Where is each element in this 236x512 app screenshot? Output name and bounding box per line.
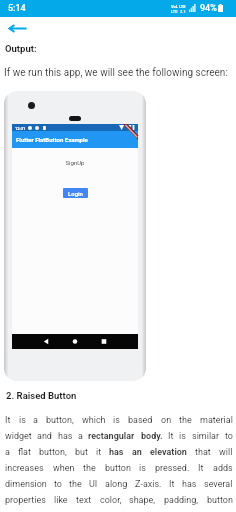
- staticText: like: [54, 495, 68, 506]
- staticText: button,: [39, 447, 67, 458]
- staticText: the: [69, 479, 82, 490]
- staticText: properties: [5, 495, 46, 506]
- staticText: when: [53, 463, 75, 474]
- staticText: has: [182, 479, 197, 490]
- staticText: SignUp: [12, 159, 138, 166]
- staticText: rectangular: [88, 431, 135, 442]
- button[interactable]: Back: [2, 19, 32, 37]
- staticText: 2.1: [180, 9, 186, 14]
- staticText: It: [168, 431, 174, 442]
- staticText: several: [204, 479, 233, 490]
- button[interactable]: Login: [63, 188, 88, 198]
- staticText: flat: [18, 447, 31, 458]
- staticText: LTE: [179, 4, 186, 9]
- staticText: 5:14: [8, 3, 26, 14]
- staticText: button: [207, 495, 233, 506]
- staticText: will: [219, 447, 233, 458]
- staticText: body.: [141, 431, 163, 442]
- staticText: to: [54, 479, 62, 490]
- staticText: is: [19, 415, 26, 426]
- staticText: a: [5, 447, 10, 458]
- staticText: Flutter FlatButton Example: [16, 136, 88, 143]
- staticText: adds: [213, 463, 233, 474]
- staticText: to: [225, 431, 233, 442]
- staticText: color,: [100, 495, 122, 506]
- staticText: pressed.: [155, 463, 190, 474]
- staticText: button: [105, 463, 131, 474]
- staticText: text: [76, 495, 92, 506]
- staticText: 94%: [200, 3, 217, 14]
- staticText: LTE: [171, 9, 178, 14]
- staticText: padding,: [164, 495, 199, 506]
- staticText: along: [105, 479, 128, 490]
- staticText: based: [128, 415, 153, 426]
- staticText: the: [179, 415, 192, 426]
- staticText: It: [198, 463, 204, 474]
- staticText: shape,: [129, 495, 156, 506]
- staticText: It: [169, 479, 175, 490]
- staticText: VoL: [171, 4, 178, 9]
- staticText: has: [109, 447, 124, 458]
- staticText: UI: [89, 479, 98, 490]
- staticText: elevation: [150, 447, 187, 458]
- staticText: on: [161, 415, 172, 426]
- staticText: but: [75, 447, 88, 458]
- staticText: button,: [46, 415, 74, 426]
- staticText: 2. Raised Button: [6, 390, 77, 401]
- staticText: has: [58, 431, 73, 442]
- staticText: which: [82, 415, 106, 426]
- staticText: material: [200, 415, 233, 426]
- staticText: dimension: [5, 479, 47, 490]
- staticText: is: [179, 431, 186, 442]
- staticText: the: [83, 463, 96, 474]
- staticText: is: [139, 463, 146, 474]
- staticText: Login: [68, 190, 83, 197]
- staticText: If we run this app, we will see the foll…: [4, 67, 228, 79]
- staticText: similar: [192, 431, 220, 442]
- staticText: that: [195, 447, 211, 458]
- staticText: Z-axis.: [135, 479, 162, 490]
- staticText: a: [78, 431, 83, 442]
- staticText: an: [132, 447, 142, 458]
- staticText: It: [5, 415, 11, 426]
- staticText: and: [37, 431, 52, 442]
- staticText: a: [33, 415, 38, 426]
- staticText: 12:31: [15, 126, 26, 131]
- staticText: increases: [5, 463, 44, 474]
- staticText: is: [113, 415, 120, 426]
- staticText: it: [96, 447, 102, 458]
- staticText: Output:: [5, 43, 37, 54]
- staticText: widget: [5, 431, 32, 442]
